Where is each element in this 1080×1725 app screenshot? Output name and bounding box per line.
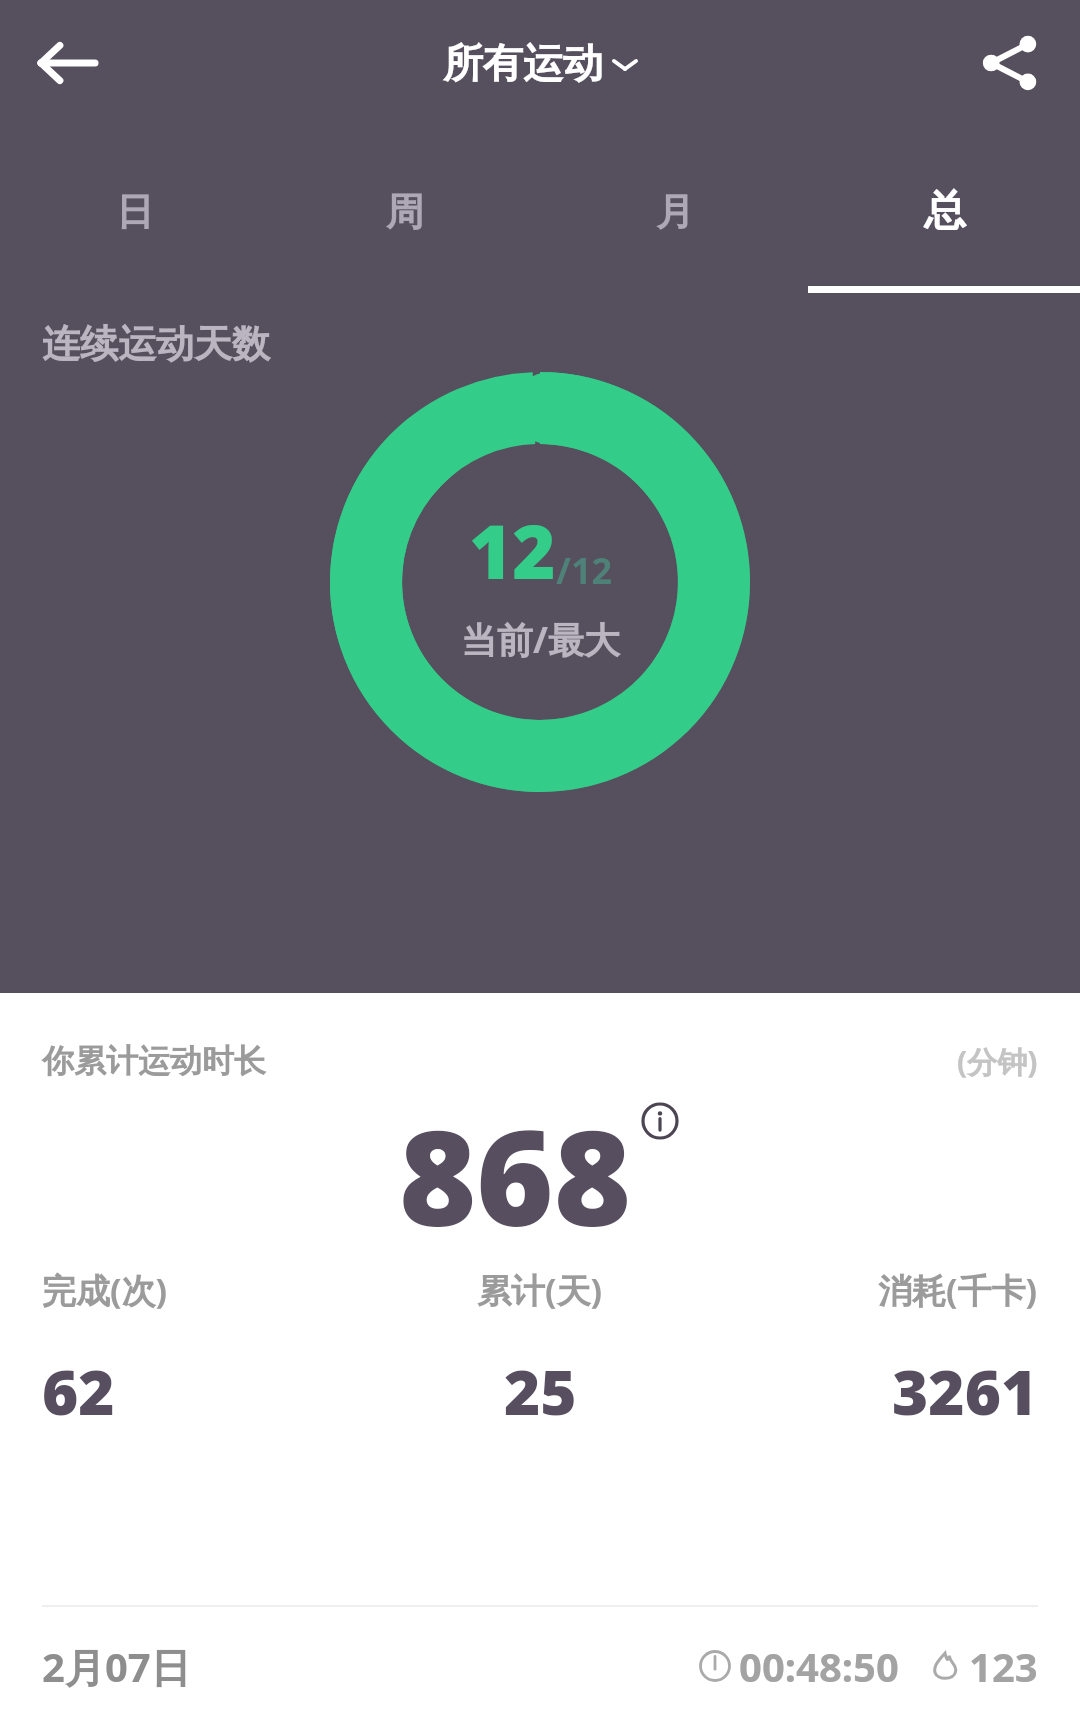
staticText: 12 — [469, 500, 556, 601]
button[interactable]: 月 — [540, 125, 810, 298]
button[interactable]: 完成(次) — [42, 1267, 374, 1433]
staticText: 3261 — [892, 1349, 1038, 1433]
button[interactable]: Back — [22, 17, 114, 109]
staticText: 00:48:50 — [739, 1639, 899, 1693]
button[interactable]: 所有运动 — [443, 38, 637, 88]
staticText: (分钟) — [957, 1041, 1038, 1082]
button[interactable]: 累计(天) — [374, 1267, 706, 1433]
staticText: 123 — [969, 1639, 1038, 1693]
staticText: 62 — [42, 1349, 115, 1433]
button[interactable]: 日 — [0, 125, 270, 298]
staticText: 月 — [656, 188, 694, 236]
staticText: 总 — [924, 185, 966, 238]
staticText: 868 — [399, 1085, 632, 1265]
staticText: 完成(次) — [42, 1267, 168, 1313]
button[interactable]: 消耗(千卡) — [706, 1267, 1038, 1433]
button[interactable]: 总 — [810, 125, 1080, 298]
staticText: /12 — [556, 546, 613, 595]
staticText: 25 — [504, 1349, 577, 1433]
staticText: 当前/最大 — [461, 615, 620, 664]
staticText: 周 — [386, 188, 424, 236]
staticText: 消耗(千卡) — [878, 1267, 1038, 1313]
staticText: 2月07日 — [42, 1639, 191, 1694]
button[interactable]: Share — [964, 18, 1054, 108]
button[interactable]: 2月07日 — [0, 1607, 1080, 1725]
staticText: 累计(天) — [477, 1267, 603, 1313]
staticText: 日 — [116, 188, 154, 236]
button[interactable]: Info — [638, 1099, 682, 1143]
staticText: 所有运动 — [443, 38, 603, 88]
staticText: 连续运动天数 — [42, 320, 270, 368]
button[interactable]: 周 — [270, 125, 540, 298]
staticText: 你累计运动时长 — [42, 1041, 266, 1081]
